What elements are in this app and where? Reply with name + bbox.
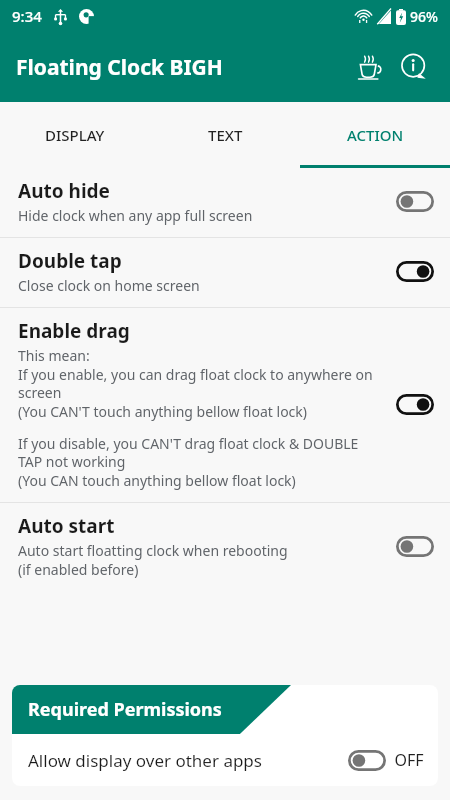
staticText: OFF <box>394 749 424 771</box>
staticText: Double tap <box>18 248 122 274</box>
staticText: (You CAN touch anything bellow float loc… <box>18 471 296 490</box>
staticText: Hide clock when any app full screen <box>18 206 253 225</box>
staticText: DISPLAY <box>45 125 105 145</box>
button[interactable]: Allow display over other apps <box>12 734 438 786</box>
button[interactable]: Auto start <box>0 503 450 591</box>
staticText: Close clock on home screen <box>18 276 200 295</box>
staticText: Allow display over other apps <box>28 749 262 772</box>
button[interactable]: Info <box>392 45 436 89</box>
staticText: 96% <box>410 7 438 26</box>
staticText: This mean: <box>18 346 90 365</box>
button[interactable]: TEXT <box>150 102 300 168</box>
button[interactable]: ACTION <box>300 102 450 168</box>
staticText: Auto start <box>18 513 115 539</box>
staticText: (You CAN'T touch anything bellow float l… <box>18 402 308 421</box>
staticText: 9:34 <box>12 6 42 26</box>
button[interactable]: Enable drag <box>0 308 450 502</box>
button[interactable]: DISPLAY <box>0 102 150 168</box>
staticText: Auto hide <box>18 178 110 204</box>
button[interactable]: Required Permissions <box>12 685 438 786</box>
staticText: Floating Clock BIGH <box>16 53 223 82</box>
staticText: Required Permissions <box>28 697 222 722</box>
staticText: If you enable, you can drag float clock … <box>18 365 386 402</box>
staticText: TEXT <box>208 125 243 145</box>
button[interactable]: Double tap <box>0 238 450 307</box>
staticText: (if enabled before) <box>18 560 139 579</box>
staticText: Auto start floatting clock when rebootin… <box>18 541 288 560</box>
staticText: If you disable, you CAN'T drag float clo… <box>18 434 386 471</box>
staticText: Enable drag <box>18 318 130 344</box>
button[interactable]: Auto hide <box>0 168 450 237</box>
staticText: ACTION <box>347 125 404 145</box>
button[interactable]: Buy me a coffee <box>348 45 392 89</box>
